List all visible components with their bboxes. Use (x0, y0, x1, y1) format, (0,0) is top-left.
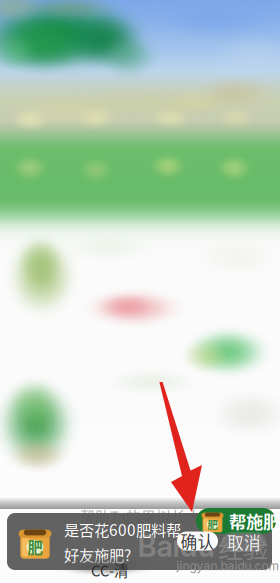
staticText: 帮助Ta的果树长大吧 (80, 505, 216, 527)
staticText: Baidu (137, 528, 214, 564)
staticText: jingyan.baidu.com (176, 559, 279, 573)
button[interactable]: 确认 (177, 531, 218, 550)
staticText: 是否花600肥料帮 (64, 518, 181, 540)
button[interactable]: 取消 (222, 532, 266, 552)
staticText: 肥 (27, 536, 42, 558)
staticText: 确认 (180, 529, 214, 553)
staticText: 好友施肥? (64, 543, 131, 566)
staticText: CC-清 (91, 559, 129, 581)
staticText: 肥 (207, 517, 217, 532)
staticText: 经验 (218, 529, 268, 565)
staticText: 取消 (227, 530, 261, 554)
button[interactable]: 肥 (196, 508, 276, 534)
staticText: 帮施肥 (229, 508, 280, 534)
